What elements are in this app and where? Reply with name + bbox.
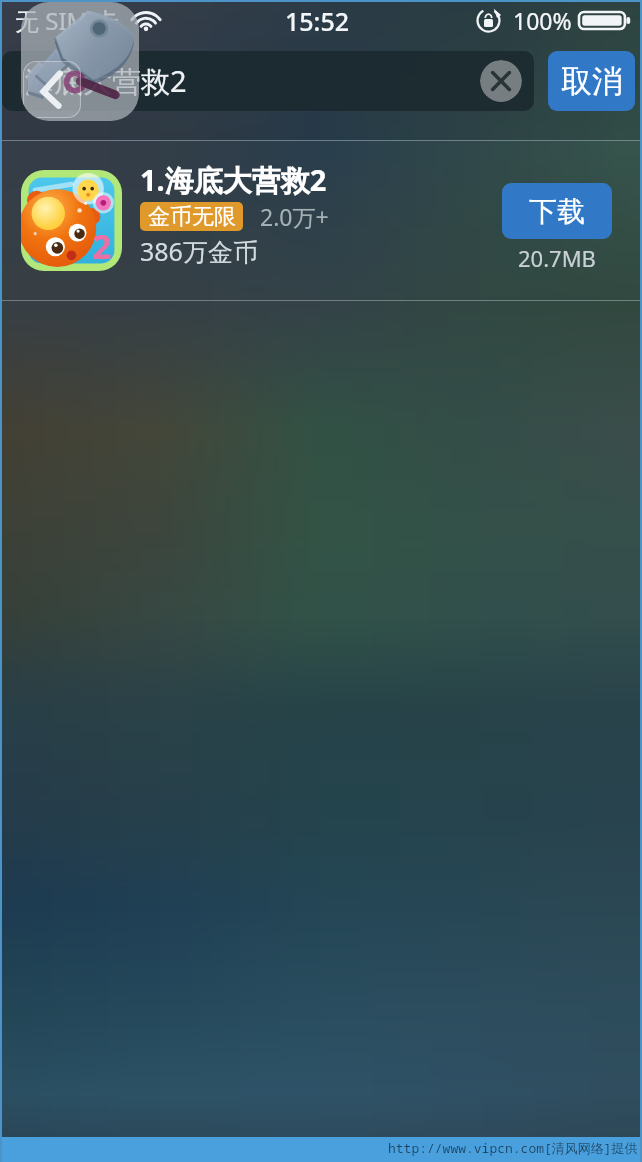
staticText: 2 [92,223,112,269]
staticText: 取消 [561,62,623,101]
staticText: 20.7MB [518,243,596,273]
staticText: 海底大营救2 [25,61,187,101]
button[interactable]: 海底大营救2 [2,51,534,111]
staticText: 15:52 [285,4,350,38]
button[interactable]: Clear search [480,60,522,102]
staticText: 下载 [529,194,585,229]
button[interactable]: 取消 [548,51,635,111]
staticText: 386万金币 [140,234,258,268]
button[interactable]: 2 [0,141,642,300]
staticText: 100% [513,5,572,36]
button[interactable]: Assistive tool [21,2,139,121]
button[interactable]: 下载 [502,183,612,239]
staticText: 1.海底大营救2 [140,160,327,200]
staticText: 金币无限 [148,203,236,231]
staticText: 无 SIM 卡 [15,4,119,37]
staticText: http://www.vipcn.com[清风网络]提供 [388,1139,638,1157]
staticText: 2.0万+ [260,201,329,232]
